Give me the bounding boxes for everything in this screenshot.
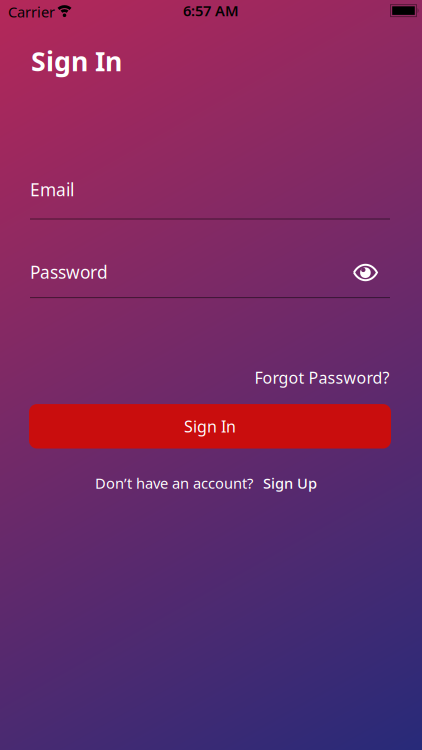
- staticText: Forgot Password?: [254, 367, 389, 388]
- button[interactable]: Sign Up: [263, 473, 317, 493]
- button[interactable]: Email: [30, 156, 390, 219]
- button[interactable]: Sign In: [29, 404, 391, 449]
- staticText: Carrier: [8, 2, 55, 22]
- staticText: Sign In: [31, 43, 122, 79]
- button[interactable]: Forgot Password?: [254, 367, 389, 388]
- staticText: Sign In: [184, 416, 236, 437]
- staticText: Don’t have an account?: [95, 473, 253, 493]
- staticText: 6:57 AM: [183, 1, 239, 20]
- staticText: Sign Up: [263, 473, 317, 493]
- button[interactable]: Password: [30, 237, 390, 300]
- staticText: Email: [30, 178, 74, 201]
- staticText: Password: [30, 260, 108, 283]
- button[interactable]: [345, 256, 386, 288]
